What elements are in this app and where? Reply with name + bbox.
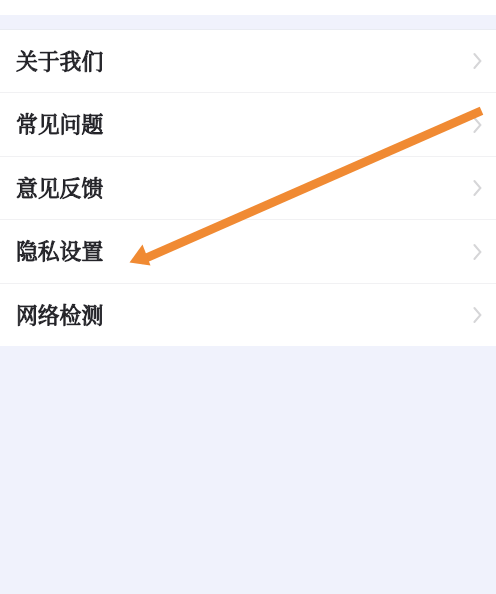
staticText: 意见反馈: [16, 171, 104, 202]
staticText: 关于我们: [16, 44, 104, 75]
staticText: 意见反馈: [16, 171, 104, 202]
staticText: 关于我们: [16, 44, 104, 75]
button[interactable]: 常见问题: [0, 93, 496, 156]
staticText: 常见问题: [16, 107, 104, 138]
staticText: 网络检测: [16, 298, 104, 329]
staticText: 常见问题: [16, 107, 104, 138]
staticText: 隐私设置: [16, 234, 104, 265]
other: Annotation arrow pointing to 隐私设置: [0, 0, 496, 594]
button[interactable]: 网络检测: [0, 284, 496, 346]
staticText: 网络检测: [16, 298, 104, 329]
staticText: 隐私设置: [16, 234, 104, 265]
button[interactable]: 隐私设置: [0, 220, 496, 283]
button[interactable]: 意见反馈: [0, 157, 496, 219]
button[interactable]: 关于我们: [0, 30, 496, 92]
